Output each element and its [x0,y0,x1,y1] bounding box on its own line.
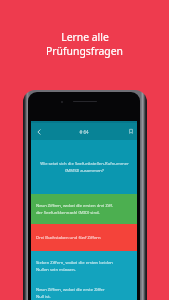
staticText: Prüfungsfragen [46,44,123,58]
button[interactable]: Back [32,125,46,139]
button[interactable]: Drei Buchstaben und fünf Ziffern [31,224,137,251]
staticText: Lerne alle [61,30,109,44]
staticText: Wie setzt sich die Seefunkstellen-Rufnum… [40,161,129,173]
staticText: # 64 [79,129,89,135]
button[interactable]: Bookmark [124,125,138,139]
staticText: Sieben Ziffern, wobei die ersten beiden … [36,260,113,272]
button[interactable]: Neun Ziffern, wobei die ersten drei Ziff… [31,194,137,224]
button[interactable]: Neun Ziffern, wobei die erste Ziffer Nul… [31,280,137,300]
staticText: Drei Buchstaben und fünf Ziffern [36,235,101,241]
staticText: Neun Ziffern, wobei die ersten drei Ziff… [36,203,113,215]
button[interactable]: Sieben Ziffern, wobei die ersten beiden … [31,251,137,280]
staticText: Neun Ziffern, wobei die erste Ziffer Nul… [36,287,105,299]
